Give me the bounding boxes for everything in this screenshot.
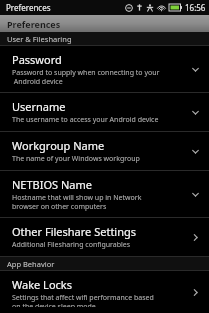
other: Expand NETBIOS Name [187, 186, 203, 202]
staticText: Username [12, 99, 66, 114]
button[interactable]: Other Fileshare Settings [0, 218, 209, 256]
staticText: The username to access your Android devi… [12, 115, 159, 125]
staticText: Preferences [7, 18, 61, 30]
staticText: Preferences [6, 2, 51, 13]
staticText: Workgroup Name [12, 138, 105, 153]
button[interactable]: Wake Locks [0, 271, 209, 313]
staticText: Wake Locks [12, 277, 72, 292]
staticText: Hostname that will show up in Network br… [12, 193, 142, 211]
staticText: NETBIOS Name [12, 177, 92, 192]
staticText: Password [12, 52, 62, 67]
staticText: App Behavior [7, 259, 55, 269]
staticText: The name of your Windows workgroup [12, 154, 140, 164]
button[interactable]: NETBIOS Name [0, 171, 209, 217]
staticText: Other Fileshare Settings [12, 224, 137, 239]
staticText: Additional Filesharing configurables [12, 240, 131, 250]
staticText: 16:56 [185, 2, 206, 13]
other: Open Other Fileshare Settings [187, 229, 203, 245]
button[interactable]: Password [0, 46, 209, 92]
other: Expand Password [187, 61, 203, 77]
staticText: Password to supply when connecting to yo… [12, 68, 160, 86]
other: Open Wake Locks [187, 284, 203, 300]
button[interactable]: Username [0, 93, 209, 131]
staticText: User & Filesharing [7, 34, 72, 44]
staticText: Settings that affect wifi performance ba… [12, 293, 154, 307]
button[interactable]: Workgroup Name [0, 132, 209, 170]
other: Expand Username [187, 104, 203, 120]
other: Expand Workgroup Name [187, 143, 203, 159]
